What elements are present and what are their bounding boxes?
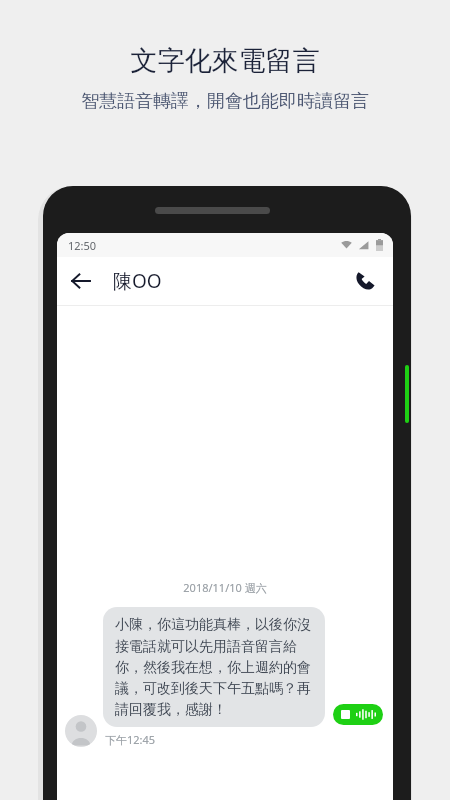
staticText: 文字化來電留言 — [0, 44, 450, 78]
staticText: 下午12:45 — [105, 732, 156, 747]
staticText: 12:50 — [68, 238, 97, 253]
button[interactable]: Call — [341, 257, 389, 305]
staticText: 陳OO — [113, 268, 162, 294]
button[interactable]: 小陳，你這功能真棒，以後你沒接電話就可以先用語音留言給你，然後我在想，你上週約的… — [103, 607, 325, 727]
button[interactable]: Contact avatar — [65, 715, 97, 747]
staticText: 2018/11/10 週六 — [57, 580, 393, 595]
staticText: 智慧語音轉譯，開會也能即時讀留言 — [0, 90, 450, 113]
button[interactable]: Stop voice playback — [333, 704, 383, 725]
button[interactable]: Back — [57, 257, 105, 305]
staticText: 小陳，你這功能真棒，以後你沒接電話就可以先用語音留言給你，然後我在想，你上週約的… — [115, 616, 313, 718]
